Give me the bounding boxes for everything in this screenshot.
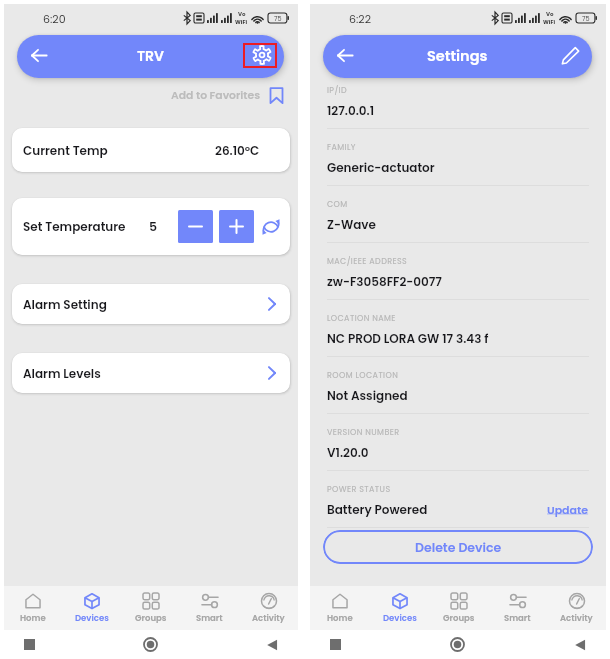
staticText: ROOM LOCATION	[327, 370, 399, 381]
button[interactable]: Devices	[62, 586, 121, 630]
staticText: MAC/IEEE ADDRESS	[327, 256, 408, 267]
staticText: Groups	[135, 612, 167, 624]
button[interactable]: Alarm Setting	[12, 284, 290, 324]
button[interactable]: Decrease temperature	[178, 210, 213, 243]
staticText: Not Assigned	[327, 387, 408, 404]
button[interactable]: Add to Favorites	[171, 85, 284, 106]
staticText: Activity	[560, 612, 593, 624]
staticText: Groups	[443, 612, 475, 624]
staticText: Alarm Setting	[23, 296, 107, 313]
button[interactable]: Home	[4, 586, 62, 630]
staticText: VERSION NUMBER	[327, 427, 400, 438]
staticText: Vo	[546, 10, 554, 18]
button[interactable]: Activity	[547, 586, 606, 630]
staticText: zw-F3058FF2-0077	[327, 273, 442, 290]
staticText: Devices	[75, 612, 109, 624]
staticText: V1.20.0	[327, 444, 369, 461]
staticText: Update	[547, 502, 589, 517]
staticText: 127.0.0.1	[327, 102, 375, 119]
button[interactable]: Back	[23, 39, 55, 71]
button[interactable]: Increase temperature	[219, 210, 254, 243]
button[interactable]: Update	[547, 502, 589, 517]
button[interactable]: Settings	[246, 39, 278, 71]
staticText: Vo	[238, 10, 246, 18]
button[interactable]: Activity	[239, 586, 298, 630]
staticText: Smart	[196, 612, 223, 624]
staticText: IP/ID	[327, 85, 348, 96]
staticText: Home	[327, 612, 353, 624]
button[interactable]: Smart	[488, 586, 547, 630]
staticText: Alarm Levels	[23, 365, 101, 382]
staticText: Activity	[252, 612, 285, 624]
staticText: COM	[327, 199, 348, 210]
staticText: Z-Wave	[327, 216, 376, 233]
staticText: 75	[582, 14, 590, 23]
staticText: FAMILY	[327, 142, 356, 153]
button[interactable]: Current Temp	[12, 128, 290, 172]
staticText: 26.10°C	[215, 142, 260, 159]
staticText: Current Temp	[23, 142, 108, 159]
staticText: Smart	[504, 612, 531, 624]
staticText: WiFi	[235, 18, 248, 26]
button[interactable]: Home	[310, 586, 370, 630]
button[interactable]: Groups	[429, 586, 488, 630]
staticText: 75	[274, 14, 282, 23]
staticText: Devices	[383, 612, 417, 624]
button[interactable]: Delete Device	[323, 530, 593, 564]
staticText: 6:22	[349, 11, 371, 26]
button[interactable]: Back	[329, 39, 361, 71]
staticText: Add to Favorites	[171, 88, 261, 103]
staticText: LOCATION NAME	[327, 313, 396, 324]
button[interactable]: Edit	[554, 39, 586, 71]
staticText: WiFi	[543, 18, 556, 26]
staticText: TRV	[137, 46, 165, 66]
staticText: Set Temperature	[23, 218, 126, 235]
button[interactable]: Set Temperature	[12, 198, 290, 255]
staticText: Generic-actuator	[327, 159, 435, 176]
button[interactable]: Groups	[121, 586, 180, 630]
staticText: Settings	[427, 46, 488, 66]
button[interactable]: Smart	[180, 586, 239, 630]
staticText: 5	[149, 218, 158, 235]
button[interactable]: Alarm Levels	[12, 353, 290, 393]
button[interactable]: Devices	[370, 586, 429, 630]
staticText: Battery Powered	[327, 501, 428, 518]
button[interactable]: Refresh	[261, 217, 281, 237]
staticText: 6:20	[43, 11, 66, 26]
staticText: Delete Device	[415, 539, 502, 556]
staticText: POWER STATUS	[327, 484, 391, 495]
staticText: Home	[20, 612, 46, 624]
staticText: NC PROD LORA GW 17 3.43 f	[327, 330, 489, 347]
